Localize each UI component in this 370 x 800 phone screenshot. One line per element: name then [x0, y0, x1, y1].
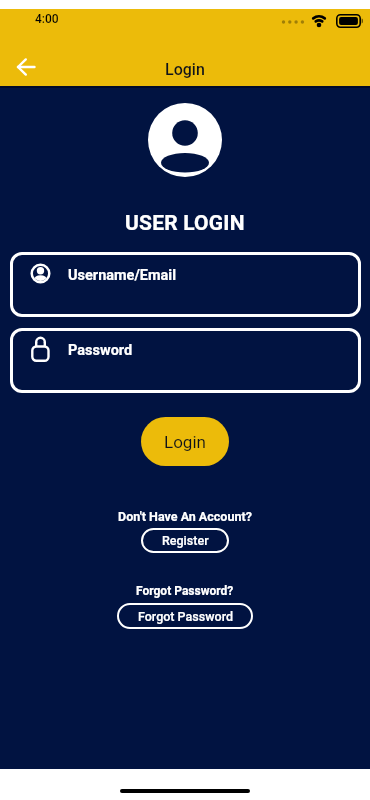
staticText: Login — [164, 432, 206, 452]
staticText: Register — [162, 533, 209, 548]
staticText: 4:00 — [35, 12, 59, 26]
staticText: Forgot Password — [138, 609, 233, 624]
button[interactable]: Forgot Password — [117, 603, 253, 629]
staticText: Don't Have An Account? — [118, 509, 252, 524]
staticText: Login — [165, 60, 205, 79]
staticText: Username/Email — [68, 267, 177, 284]
button[interactable]: Password — [10, 328, 361, 393]
button[interactable]: Login — [141, 417, 229, 466]
button[interactable]: Register — [141, 528, 229, 553]
staticText: Password — [68, 342, 133, 359]
staticText: USER LOGIN — [125, 211, 245, 236]
staticText: Forgot Password? — [136, 584, 234, 598]
button[interactable]: Username/Email — [10, 252, 361, 317]
button[interactable] — [16, 57, 36, 77]
